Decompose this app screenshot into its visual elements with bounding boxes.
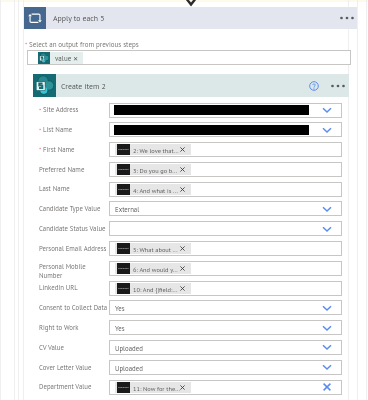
staticText: 11: Now for the... bbox=[133, 384, 182, 392]
button[interactable] bbox=[109, 340, 342, 355]
button[interactable]: More commands bbox=[330, 82, 346, 90]
button[interactable]: SharePoint bbox=[115, 144, 191, 155]
staticText: value bbox=[55, 54, 72, 63]
button[interactable]: Expand bbox=[320, 224, 334, 234]
button[interactable]: Expand bbox=[320, 125, 334, 135]
staticText: Preferred Name bbox=[39, 165, 109, 174]
staticText: * bbox=[39, 106, 42, 114]
staticText: * bbox=[25, 40, 28, 48]
button[interactable] bbox=[109, 281, 342, 296]
button[interactable]: SharePoint bbox=[115, 283, 191, 294]
staticText: External bbox=[115, 205, 140, 214]
button[interactable]: Expand bbox=[320, 303, 334, 313]
staticText: Right to Work bbox=[39, 323, 109, 332]
button[interactable]: Clear value bbox=[320, 380, 334, 394]
staticText: 10: And {|field:... bbox=[133, 285, 182, 293]
staticText: SharePoint bbox=[118, 188, 129, 191]
button[interactable] bbox=[109, 380, 342, 395]
button[interactable] bbox=[109, 182, 342, 197]
staticText: Site Address bbox=[43, 105, 113, 114]
button[interactable] bbox=[109, 142, 342, 157]
button[interactable]: SharePoint bbox=[115, 243, 191, 254]
button[interactable] bbox=[109, 221, 342, 236]
button[interactable]: Expand bbox=[320, 323, 334, 333]
button[interactable]: SharePoint bbox=[115, 382, 191, 393]
staticText: * bbox=[39, 126, 42, 134]
staticText: Create item 2 bbox=[61, 81, 106, 91]
staticText: Personal Mobile Number bbox=[39, 262, 109, 280]
button[interactable]: SharePoint bbox=[115, 263, 191, 274]
staticText: Yes bbox=[115, 304, 125, 313]
button[interactable] bbox=[109, 300, 342, 315]
button[interactable]: SharePoint bbox=[115, 164, 191, 175]
staticText: Uploaded bbox=[115, 364, 143, 373]
button[interactable]: Help bbox=[309, 81, 319, 91]
staticText: CV Value bbox=[39, 343, 109, 352]
staticText: 6: And would y... bbox=[133, 265, 182, 273]
staticText: SharePoint bbox=[118, 287, 129, 290]
staticText: Candidate Status Value bbox=[39, 224, 109, 233]
staticText: 4: And what is ... bbox=[133, 186, 182, 194]
button[interactable]: Expand bbox=[320, 204, 334, 214]
staticText: First Name bbox=[43, 145, 113, 154]
button[interactable] bbox=[109, 162, 342, 177]
staticText: SharePoint bbox=[118, 267, 129, 270]
staticText: Yes bbox=[115, 324, 125, 333]
staticText: Consent to Collect Data bbox=[39, 303, 109, 312]
button[interactable]: Expand bbox=[320, 342, 334, 352]
button[interactable]: Expand bbox=[320, 105, 334, 115]
staticText: Select an output from previous steps bbox=[29, 40, 139, 49]
staticText: SharePoint bbox=[118, 247, 129, 250]
staticText: SharePoint bbox=[118, 148, 129, 151]
button[interactable] bbox=[27, 50, 351, 65]
staticText: 5: What about ... bbox=[133, 245, 182, 253]
button[interactable] bbox=[109, 320, 342, 335]
staticText: SharePoint bbox=[118, 168, 129, 171]
staticText: 2: We love that... bbox=[133, 146, 182, 154]
staticText: Personal Email Address bbox=[39, 244, 109, 253]
staticText: Apply to each 5 bbox=[53, 13, 105, 23]
staticText: Cover Letter Value bbox=[39, 363, 109, 372]
button[interactable]: value bbox=[38, 52, 83, 64]
button[interactable] bbox=[109, 201, 342, 216]
staticText: LinkedIn URL bbox=[39, 283, 109, 292]
button[interactable] bbox=[109, 241, 342, 256]
button[interactable]: Expand bbox=[320, 362, 334, 372]
staticText: Last Name bbox=[39, 184, 109, 193]
button[interactable]: More commands bbox=[339, 14, 355, 22]
button[interactable] bbox=[109, 103, 342, 118]
staticText: 3: Do you go b... bbox=[133, 166, 182, 174]
button[interactable] bbox=[109, 122, 342, 137]
staticText: Uploaded bbox=[115, 344, 143, 353]
staticText: Department Value bbox=[39, 382, 109, 391]
button[interactable] bbox=[109, 360, 342, 375]
staticText: List Name bbox=[43, 125, 113, 134]
staticText: SharePoint bbox=[118, 386, 129, 389]
staticText: Candidate Type Value bbox=[39, 204, 109, 213]
button[interactable] bbox=[109, 261, 342, 276]
staticText: ✕ bbox=[73, 55, 79, 62]
button[interactable] bbox=[33, 74, 349, 97]
staticText: * bbox=[39, 145, 42, 153]
button[interactable] bbox=[24, 7, 357, 29]
button[interactable]: SharePoint bbox=[115, 184, 191, 195]
